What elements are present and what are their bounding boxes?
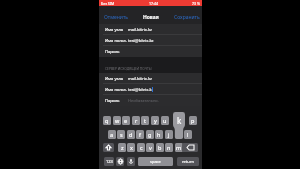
staticText: 17:44 bbox=[149, 1, 158, 6]
button[interactable]: m bbox=[175, 143, 183, 152]
staticText: Сохранить bbox=[174, 14, 200, 21]
staticText: Необязательно. bbox=[128, 98, 159, 103]
staticText: p bbox=[191, 117, 195, 124]
button[interactable]: Пароль bbox=[99, 95, 202, 106]
button[interactable]: h bbox=[155, 130, 163, 139]
button[interactable]: e bbox=[122, 116, 130, 125]
staticText: Имя узла bbox=[105, 76, 124, 81]
staticText: t bbox=[144, 117, 146, 124]
button[interactable]: Пароль bbox=[99, 46, 202, 57]
button[interactable]: 123 bbox=[104, 157, 114, 166]
staticText: m bbox=[176, 144, 182, 151]
staticText: l bbox=[187, 131, 189, 138]
staticText: Имя польз. bbox=[105, 87, 127, 92]
button[interactable] bbox=[174, 130, 182, 139]
button[interactable]: space bbox=[138, 157, 173, 166]
staticText: Имя польз. bbox=[105, 38, 127, 43]
staticText: Новая bbox=[143, 14, 159, 21]
button[interactable]: q bbox=[103, 116, 111, 125]
staticText: x bbox=[130, 144, 133, 151]
button[interactable]: n bbox=[165, 143, 173, 152]
staticText: Имя узла bbox=[105, 27, 124, 32]
staticText: v bbox=[149, 144, 152, 151]
staticText: 123 bbox=[106, 159, 113, 164]
staticText: c bbox=[140, 144, 143, 151]
button[interactable]: Shift bbox=[103, 143, 114, 152]
staticText: space bbox=[150, 159, 161, 164]
staticText: q bbox=[105, 117, 109, 124]
button[interactable]: g bbox=[146, 130, 154, 139]
staticText: r bbox=[135, 117, 138, 124]
button[interactable]: t bbox=[141, 116, 149, 125]
button[interactable]: Имя польз. bbox=[99, 84, 202, 95]
button[interactable]: x bbox=[127, 143, 135, 152]
staticText: test@bitrix.kz bbox=[128, 38, 154, 43]
staticText: Отменить bbox=[104, 14, 128, 21]
button[interactable]: r bbox=[132, 116, 140, 125]
button[interactable]: Имя польз. bbox=[99, 35, 202, 46]
staticText: mail.bitrix.kz bbox=[128, 27, 152, 32]
staticText: f bbox=[139, 131, 141, 138]
button[interactable]: Имя узла bbox=[99, 24, 202, 35]
button[interactable]: z bbox=[118, 143, 126, 152]
button[interactable]: a bbox=[108, 130, 116, 139]
button[interactable]: j bbox=[165, 130, 173, 139]
staticText: w bbox=[115, 117, 120, 124]
staticText: n bbox=[167, 144, 171, 151]
staticText: j bbox=[168, 131, 170, 138]
staticText: d bbox=[129, 131, 133, 138]
staticText: g bbox=[148, 131, 152, 138]
button[interactable]: Change language bbox=[116, 157, 124, 166]
staticText: u bbox=[163, 117, 167, 124]
staticText: mail.bitrix.kz bbox=[128, 76, 152, 81]
staticText: z bbox=[121, 144, 124, 151]
button[interactable]: v bbox=[146, 143, 154, 152]
staticText: Без SIM bbox=[101, 1, 115, 6]
button[interactable]: f bbox=[136, 130, 144, 139]
button[interactable]: c bbox=[137, 143, 145, 152]
button[interactable]: l bbox=[184, 130, 192, 139]
staticText: b bbox=[158, 144, 162, 151]
button[interactable]: s bbox=[117, 130, 125, 139]
button[interactable]: y bbox=[151, 116, 159, 125]
button[interactable]: d bbox=[127, 130, 135, 139]
staticText: k bbox=[177, 115, 182, 126]
button[interactable]: return bbox=[177, 157, 199, 166]
staticText: Пароль bbox=[105, 49, 120, 54]
staticText: СЕРВЕР ИСХОДЯЩЕЙ ПОЧТЫ bbox=[105, 66, 152, 70]
staticText: h bbox=[157, 131, 161, 138]
staticText: y bbox=[154, 117, 157, 124]
button[interactable]: p bbox=[189, 116, 197, 125]
staticText: return bbox=[182, 159, 194, 164]
staticText: s bbox=[120, 131, 123, 138]
staticText: e bbox=[124, 117, 128, 124]
button[interactable]: Имя узла bbox=[99, 73, 202, 84]
staticText: a bbox=[110, 131, 114, 138]
button[interactable]: Backspace bbox=[182, 143, 198, 152]
staticText: 73 % bbox=[192, 1, 200, 6]
button[interactable]: Отменить bbox=[102, 12, 130, 23]
button[interactable]: Сохранить bbox=[172, 12, 202, 23]
button[interactable]: u bbox=[161, 116, 169, 125]
button[interactable]: Dictation bbox=[127, 157, 135, 166]
button[interactable]: b bbox=[156, 143, 164, 152]
staticText: Пароль bbox=[105, 98, 120, 103]
button[interactable]: w bbox=[113, 116, 121, 125]
staticText: test@bitrix.k bbox=[128, 87, 152, 92]
